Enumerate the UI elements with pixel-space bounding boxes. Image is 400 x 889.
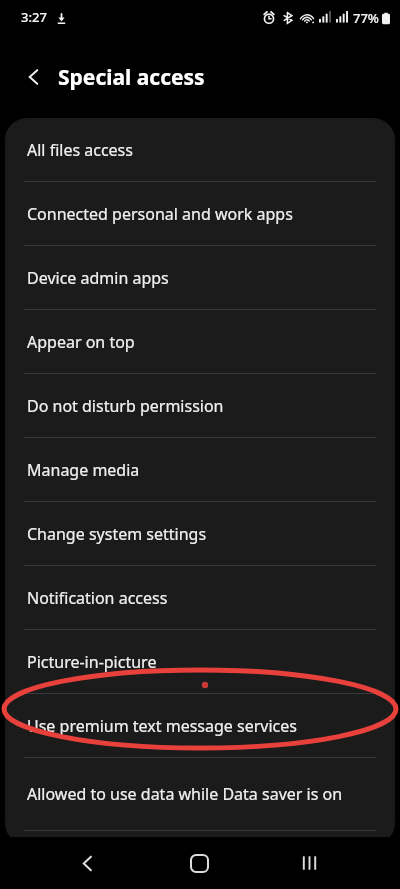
- button[interactable]: Appear on top: [5, 310, 395, 373]
- button[interactable]: Use premium text message services: [5, 694, 395, 757]
- staticText: Appear on top: [27, 331, 135, 353]
- staticText: Notification access: [27, 587, 168, 609]
- staticText: 77%: [353, 9, 379, 27]
- button[interactable]: Picture-in-picture: [5, 630, 395, 693]
- staticText: Connected personal and work apps: [27, 203, 293, 225]
- staticText: Do not disturb permission: [27, 395, 224, 417]
- staticText: Use premium text message services: [27, 715, 297, 737]
- button[interactable]: Device admin apps: [5, 246, 395, 309]
- button[interactable]: Connected personal and work apps: [5, 182, 395, 245]
- staticText: All files access: [27, 139, 133, 161]
- staticText: Device admin apps: [27, 267, 169, 289]
- button[interactable]: Allowed to use data while Data saver is …: [5, 758, 395, 830]
- staticText: Special access: [58, 63, 205, 92]
- button[interactable]: Change system settings: [5, 502, 395, 565]
- staticText: Picture-in-picture: [27, 651, 157, 673]
- button[interactable]: Back: [14, 57, 54, 97]
- staticText: Allowed to use data while Data saver is …: [27, 783, 377, 805]
- staticText: 3:27: [21, 8, 47, 26]
- staticText: Manage media: [27, 459, 140, 481]
- button[interactable]: Manage media: [5, 438, 395, 501]
- button[interactable]: Notification access: [5, 566, 395, 629]
- button[interactable]: Do not disturb permission: [5, 374, 395, 437]
- button[interactable]: Recent apps: [289, 843, 329, 883]
- button[interactable]: All files access: [5, 118, 395, 181]
- staticText: Change system settings: [27, 523, 207, 545]
- button[interactable]: Back: [67, 843, 107, 883]
- button[interactable]: Home: [178, 842, 220, 884]
